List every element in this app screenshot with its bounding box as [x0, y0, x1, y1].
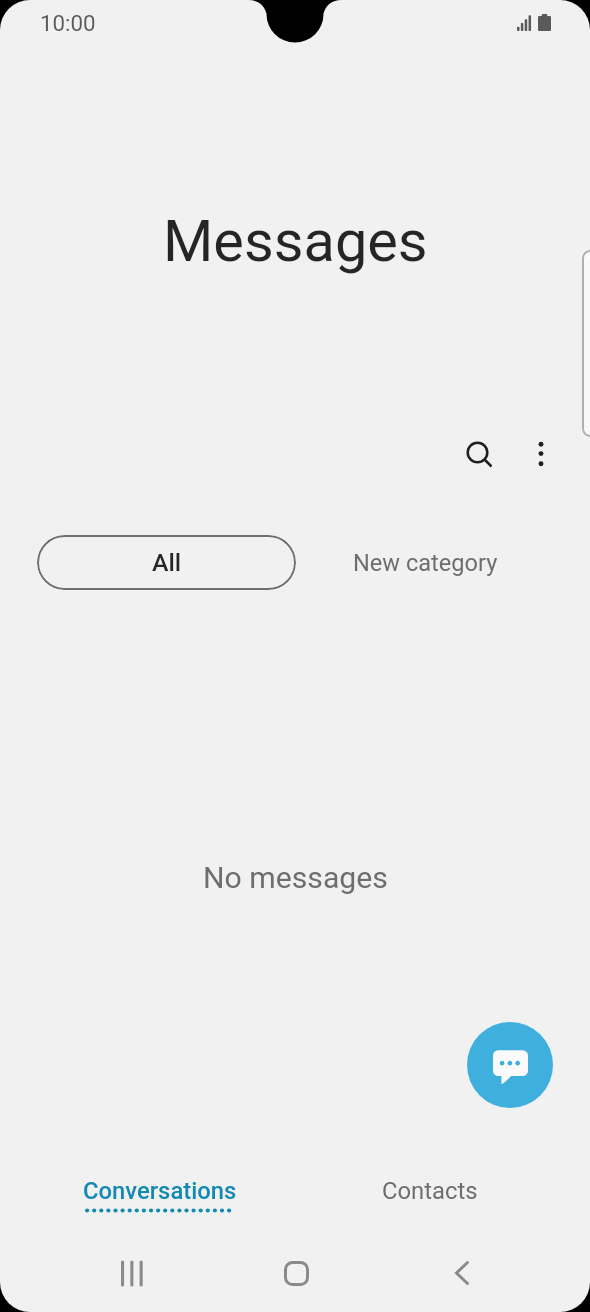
staticText: No messages: [203, 860, 388, 895]
button[interactable]: Home: [257, 1234, 336, 1312]
button[interactable]: Search: [446, 421, 509, 484]
button[interactable]: New conversation: [467, 1022, 553, 1108]
staticText: New category: [353, 549, 498, 577]
button[interactable]: Recents: [92, 1234, 171, 1312]
staticText: All: [152, 548, 182, 577]
staticText: Messages: [163, 207, 428, 275]
button[interactable]: More options: [509, 422, 572, 485]
staticText: Contacts: [382, 1177, 478, 1205]
button[interactable]: Conversations: [25, 1177, 295, 1239]
button[interactable]: New category: [330, 535, 520, 590]
button[interactable]: All: [37, 535, 296, 590]
staticText: 10:00: [40, 10, 96, 36]
staticText: Conversations: [83, 1177, 237, 1205]
button[interactable]: Back: [422, 1234, 501, 1312]
button[interactable]: Contacts: [295, 1177, 565, 1239]
